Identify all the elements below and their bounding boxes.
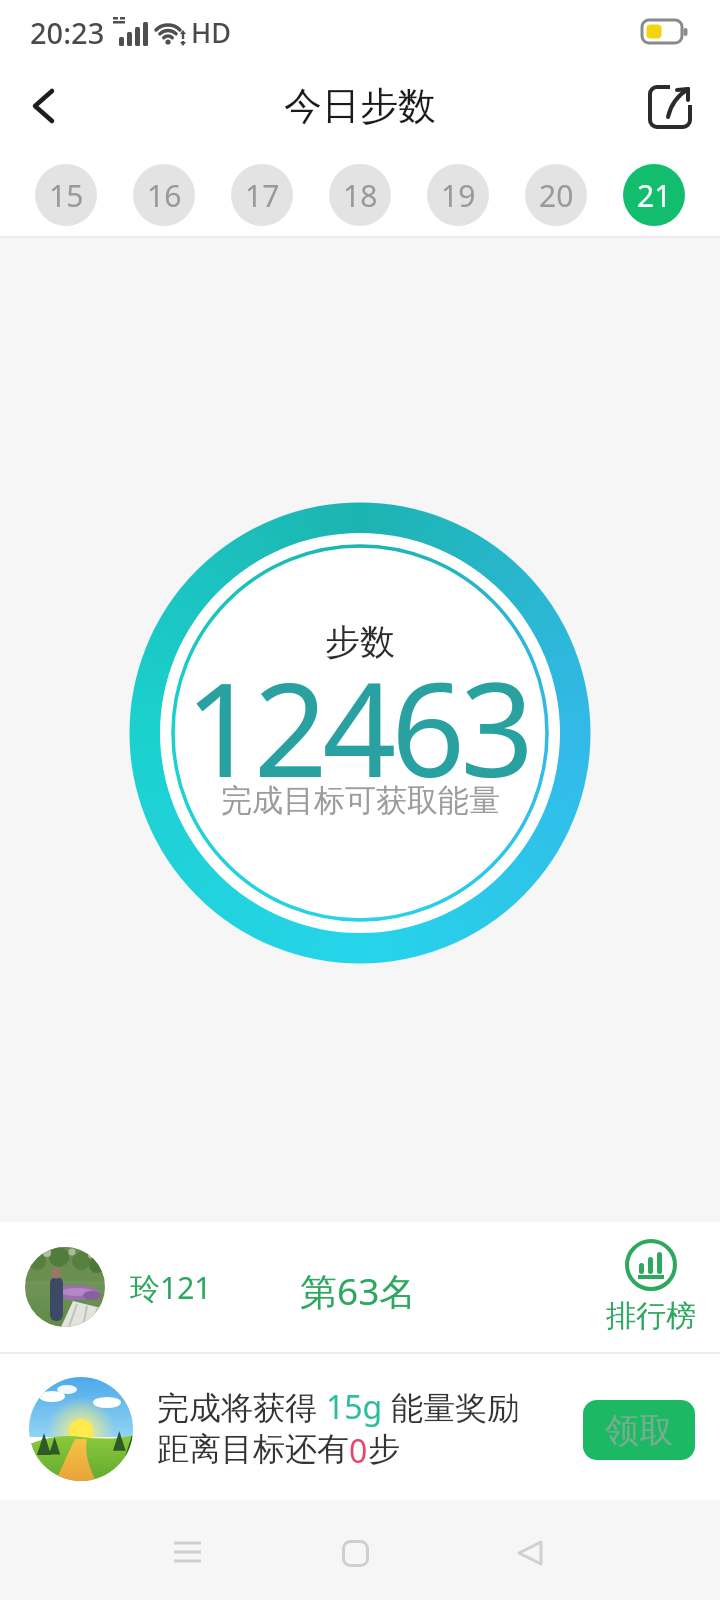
button[interactable]: 20 bbox=[525, 164, 587, 226]
button[interactable] bbox=[648, 83, 694, 129]
button[interactable] bbox=[173, 1538, 205, 1568]
button[interactable] bbox=[22, 84, 66, 128]
button[interactable]: 排行榜 bbox=[606, 1239, 696, 1335]
staticText: 完成将获得 bbox=[157, 1385, 326, 1429]
staticText: 16 bbox=[147, 175, 182, 216]
staticText: 领取 bbox=[605, 1409, 673, 1452]
staticText: 18 bbox=[343, 175, 378, 216]
staticText: 步 bbox=[368, 1429, 400, 1469]
staticText: 排行榜 bbox=[606, 1297, 696, 1335]
button[interactable]: 16 bbox=[133, 164, 195, 226]
staticText: 15g bbox=[326, 1385, 383, 1429]
button[interactable]: 17 bbox=[231, 164, 293, 226]
staticText: 今日步数 bbox=[284, 82, 436, 130]
staticText: 能量奖励 bbox=[383, 1385, 520, 1429]
button[interactable]: 玲121 bbox=[0, 1222, 720, 1352]
staticText: 15 bbox=[49, 175, 84, 216]
staticText: 玲121 bbox=[130, 1267, 212, 1308]
staticText: 19 bbox=[441, 175, 476, 216]
staticText: 步数 bbox=[325, 620, 395, 664]
staticText: 完成目标可获取能量 bbox=[221, 781, 500, 820]
button[interactable]: 19 bbox=[427, 164, 489, 226]
staticText: 20 bbox=[539, 175, 574, 216]
staticText: 0 bbox=[349, 1429, 368, 1473]
button[interactable]: 18 bbox=[329, 164, 391, 226]
staticText: 12463 bbox=[185, 639, 529, 815]
button[interactable]: 21 bbox=[623, 164, 685, 226]
staticText: 距离目标还有 bbox=[157, 1429, 349, 1469]
staticText: 第63名 bbox=[300, 1265, 417, 1316]
button[interactable]: 领取 bbox=[583, 1400, 695, 1460]
staticText: HD bbox=[191, 14, 231, 51]
button[interactable] bbox=[342, 1540, 370, 1568]
staticText: 20:23 bbox=[30, 13, 105, 52]
button[interactable]: 15 bbox=[35, 164, 97, 226]
staticText: 17 bbox=[245, 175, 280, 216]
button[interactable] bbox=[515, 1540, 545, 1568]
staticText: 21 bbox=[637, 175, 672, 216]
